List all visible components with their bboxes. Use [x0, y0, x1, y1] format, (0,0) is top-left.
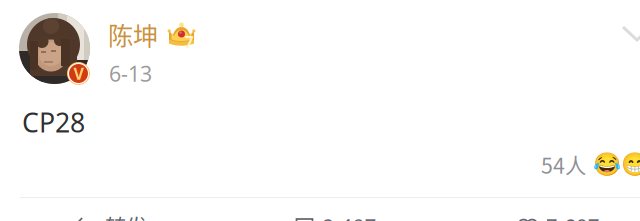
staticText: 2,487 [322, 211, 376, 221]
staticText: 7 [184, 31, 193, 53]
staticText: CP28 [22, 104, 85, 140]
button[interactable]: 54人 [541, 149, 640, 180]
staticText: 转发 [105, 211, 147, 221]
button[interactable]: 转发 [0, 206, 223, 221]
button[interactable]: 陈坤 profile photo [19, 13, 90, 84]
staticText: 陈坤 [108, 16, 158, 53]
button[interactable]: More options [623, 27, 640, 71]
button[interactable]: VIP level 7 badge [166, 20, 197, 47]
staticText: V [73, 63, 83, 84]
staticText: 54人 [541, 149, 586, 180]
staticText: 7,687 [546, 211, 600, 221]
staticText: 6-13 [109, 59, 152, 88]
button[interactable]: 2,487 [223, 206, 447, 221]
staticText: 😂😁 [593, 151, 640, 178]
button[interactable]: 陈坤 [108, 16, 158, 53]
button[interactable]: 7,687 [447, 206, 640, 221]
